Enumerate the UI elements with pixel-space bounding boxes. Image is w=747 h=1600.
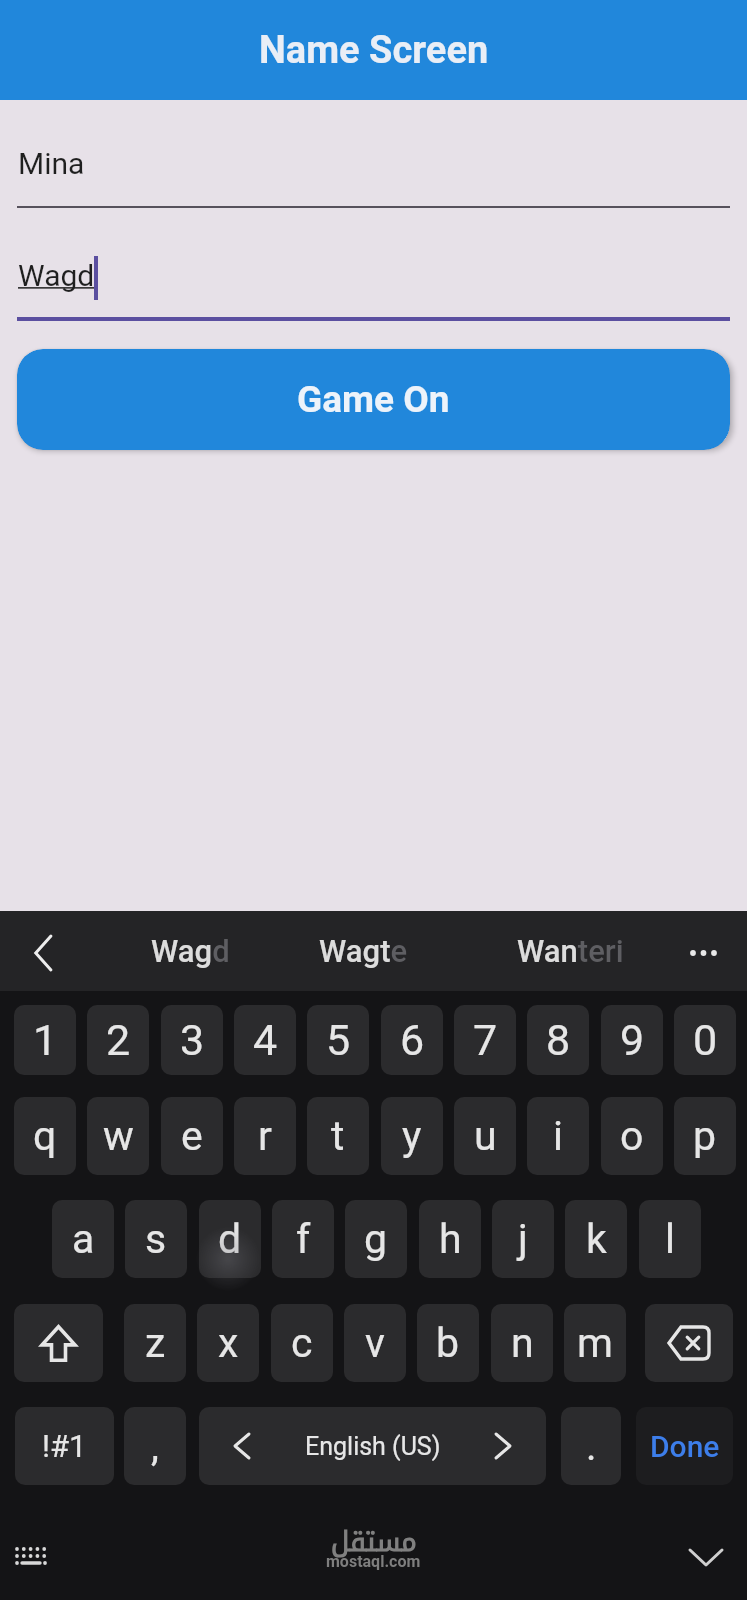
button[interactable]: x	[197, 1304, 259, 1382]
button[interactable]: w	[87, 1097, 149, 1175]
button[interactable]: i	[527, 1097, 589, 1175]
staticText: g	[364, 1215, 388, 1263]
staticText: e	[181, 1112, 203, 1160]
staticText: a	[72, 1215, 95, 1263]
staticText: i	[553, 1112, 563, 1160]
button[interactable]: s	[125, 1200, 187, 1278]
staticText: l	[665, 1215, 675, 1263]
button[interactable]: Wanteri	[485, 911, 655, 991]
staticText: Wanteri	[517, 933, 624, 969]
button[interactable]: Wagte	[278, 911, 448, 991]
button[interactable]: b	[417, 1304, 479, 1382]
button[interactable]: j	[492, 1200, 554, 1278]
staticText: Game On	[297, 378, 450, 421]
button[interactable]: Done	[636, 1407, 733, 1485]
staticText: o	[620, 1112, 644, 1160]
staticText: !#1	[42, 1428, 87, 1464]
button[interactable]	[14, 1545, 48, 1571]
button[interactable]: Game On	[17, 349, 730, 450]
button[interactable]: 9	[601, 1005, 663, 1075]
button[interactable]: e	[161, 1097, 223, 1175]
staticText: Mina	[18, 146, 85, 181]
button[interactable]: d	[199, 1200, 261, 1278]
button[interactable]: h	[419, 1200, 481, 1278]
staticText: .	[586, 1423, 597, 1470]
staticText: j	[518, 1215, 528, 1263]
staticText: x	[218, 1319, 239, 1367]
button[interactable]	[645, 1304, 733, 1382]
staticText: 5	[326, 1015, 351, 1065]
staticText: ,	[151, 1423, 159, 1470]
staticText: 3	[180, 1015, 205, 1065]
staticText: q	[33, 1112, 57, 1160]
button[interactable]: z	[124, 1304, 186, 1382]
button[interactable]: English (US)	[199, 1407, 546, 1485]
staticText: k	[586, 1215, 607, 1263]
button[interactable]: 2	[87, 1005, 149, 1075]
staticText: p	[693, 1112, 717, 1160]
staticText: 8	[546, 1015, 571, 1065]
staticText: Wagd	[18, 258, 95, 293]
staticText: b	[436, 1319, 460, 1367]
button[interactable]: p	[674, 1097, 736, 1175]
button[interactable]: m	[564, 1304, 626, 1382]
staticText: mostaql.com	[326, 1552, 421, 1571]
staticText: t	[331, 1112, 345, 1160]
button[interactable]: f	[272, 1200, 334, 1278]
button[interactable]: .	[561, 1407, 621, 1485]
button[interactable]: ,	[124, 1407, 186, 1485]
button[interactable]: q	[14, 1097, 76, 1175]
staticText: 1	[33, 1015, 58, 1065]
staticText: r	[258, 1112, 272, 1160]
staticText: h	[439, 1215, 462, 1263]
staticText: 9	[620, 1015, 645, 1065]
staticText: m	[577, 1319, 613, 1367]
button[interactable]: 6	[381, 1005, 443, 1075]
staticText: u	[474, 1112, 497, 1160]
staticText: 0	[693, 1015, 718, 1065]
staticText: 2	[106, 1015, 131, 1065]
button[interactable]: 0	[674, 1005, 736, 1075]
staticText: f	[296, 1215, 311, 1263]
button[interactable]	[690, 1549, 722, 1567]
button[interactable]: a	[52, 1200, 114, 1278]
staticText: Wagte	[319, 933, 408, 969]
staticText: y	[402, 1112, 422, 1160]
staticText: d	[218, 1215, 242, 1263]
button[interactable]: Wagd	[105, 911, 275, 991]
button[interactable]: v	[344, 1304, 406, 1382]
button[interactable]: n	[491, 1304, 553, 1382]
staticText: w	[103, 1112, 134, 1160]
button[interactable]: !#1	[15, 1407, 114, 1485]
staticText: c	[291, 1319, 313, 1367]
staticText: 4	[253, 1015, 278, 1065]
button[interactable]: u	[454, 1097, 516, 1175]
staticText: 6	[400, 1015, 425, 1065]
button[interactable]: o	[601, 1097, 663, 1175]
button[interactable]: 7	[454, 1005, 516, 1075]
button[interactable]: r	[234, 1097, 296, 1175]
button[interactable]: k	[565, 1200, 627, 1278]
staticText: n	[511, 1319, 534, 1367]
staticText: v	[365, 1319, 385, 1367]
button[interactable]: 4	[234, 1005, 296, 1075]
button[interactable]	[688, 948, 724, 958]
button[interactable]: 3	[161, 1005, 223, 1075]
button[interactable]	[33, 936, 56, 970]
button[interactable]: c	[271, 1304, 333, 1382]
button[interactable]: g	[345, 1200, 407, 1278]
button[interactable]: t	[307, 1097, 369, 1175]
staticText: z	[145, 1319, 166, 1367]
staticText: مستقل	[331, 1516, 417, 1567]
button[interactable]: 5	[307, 1005, 369, 1075]
button[interactable]: l	[639, 1200, 701, 1278]
staticText: s	[145, 1215, 167, 1263]
staticText: 7	[473, 1015, 498, 1065]
staticText: Wagd	[151, 933, 230, 969]
button[interactable]: y	[381, 1097, 443, 1175]
staticText: Name Screen	[259, 28, 489, 73]
button[interactable]	[14, 1304, 103, 1382]
button[interactable]: 8	[527, 1005, 589, 1075]
button[interactable]: 1	[14, 1005, 76, 1075]
staticText: English (US)	[305, 1432, 441, 1461]
